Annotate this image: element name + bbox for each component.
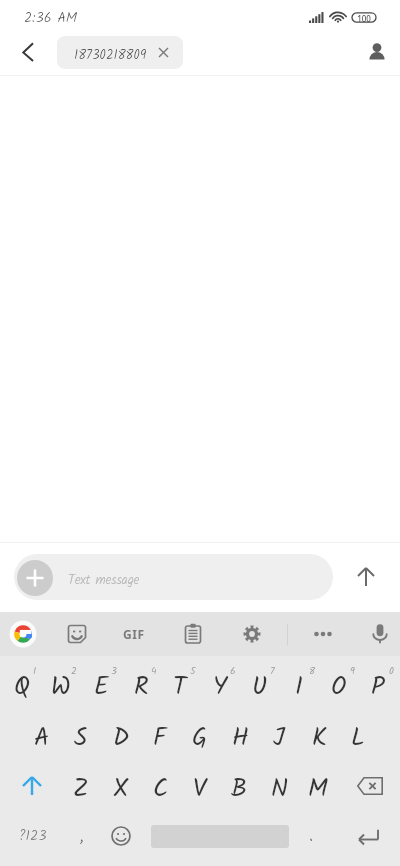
- staticText: ,: [80, 822, 84, 851]
- staticText: D: [113, 718, 130, 758]
- staticText: H: [232, 718, 249, 758]
- button[interactable]: K: [299, 714, 339, 762]
- button[interactable]: X: [101, 765, 141, 813]
- staticText: G: [192, 718, 208, 758]
- button[interactable]: V: [180, 765, 220, 813]
- button[interactable]: Contact details: [357, 33, 397, 73]
- staticText: F: [153, 718, 167, 758]
- staticText: 100: [357, 13, 371, 23]
- staticText: 5: [190, 663, 196, 679]
- button[interactable]: Attach: [14, 554, 333, 600]
- button[interactable]: ,: [62, 812, 102, 860]
- staticText: B: [231, 769, 247, 809]
- button[interactable]: Google: [9, 620, 37, 648]
- button[interactable]: Stickers: [63, 620, 91, 648]
- staticText: O: [331, 667, 347, 707]
- button[interactable]: C: [140, 765, 180, 813]
- staticText: 2:36 AM: [24, 7, 78, 29]
- button[interactable]: Settings: [238, 620, 266, 648]
- button[interactable]: Y: [200, 663, 240, 711]
- staticText: E: [94, 667, 109, 707]
- staticText: Text message: [68, 570, 140, 591]
- button[interactable]: A: [22, 714, 62, 762]
- button[interactable]: Voice input: [366, 620, 394, 648]
- button[interactable]: L: [338, 714, 378, 762]
- button[interactable]: Emoji: [102, 812, 140, 860]
- staticText: K: [312, 718, 327, 758]
- button[interactable]: W: [41, 663, 81, 711]
- button[interactable]: U: [239, 663, 279, 711]
- staticText: 2: [71, 663, 77, 679]
- staticText: J: [273, 718, 285, 758]
- button[interactable]: D: [101, 714, 141, 762]
- staticText: GIF: [123, 626, 145, 642]
- staticText: Z: [73, 769, 89, 809]
- button[interactable]: Q: [2, 663, 42, 711]
- button[interactable]: E: [81, 663, 121, 711]
- staticText: Q: [14, 667, 31, 707]
- button[interactable]: ?123: [11, 812, 55, 860]
- staticText: V: [193, 769, 207, 809]
- staticText: U: [252, 667, 267, 707]
- staticText: T: [173, 667, 187, 707]
- button[interactable]: O: [319, 663, 359, 711]
- button[interactable]: Backspace: [348, 762, 392, 810]
- button[interactable]: G: [180, 714, 220, 762]
- staticText: S: [74, 718, 88, 758]
- button[interactable]: Z: [61, 765, 101, 813]
- staticText: 9: [350, 663, 355, 679]
- button[interactable]: H: [220, 714, 260, 762]
- button[interactable]: M: [298, 765, 338, 813]
- staticText: M: [308, 769, 328, 809]
- staticText: R: [134, 667, 149, 707]
- button[interactable]: T: [160, 663, 200, 711]
- staticText: P: [371, 667, 385, 707]
- staticText: 3: [111, 663, 117, 679]
- button[interactable]: GIF: [120, 620, 148, 648]
- staticText: W: [51, 667, 71, 707]
- staticText: I: [295, 667, 303, 707]
- staticText: A: [34, 718, 50, 758]
- button[interactable]: Shift: [10, 762, 54, 810]
- staticText: 18730218809: [74, 45, 147, 66]
- staticText: 6: [230, 663, 236, 679]
- button[interactable]: Enter: [345, 812, 391, 860]
- button[interactable]: N: [259, 765, 299, 813]
- button[interactable]: I: [279, 663, 319, 711]
- button[interactable]: Clipboard: [179, 620, 207, 648]
- staticText: 1: [33, 663, 37, 679]
- staticText: .: [309, 822, 314, 851]
- staticText: X: [113, 769, 129, 809]
- staticText: L: [351, 718, 365, 758]
- button[interactable]: B: [219, 765, 259, 813]
- button[interactable]: F: [140, 714, 180, 762]
- button[interactable]: J: [259, 714, 299, 762]
- button[interactable]: Remove recipient: [153, 42, 173, 62]
- staticText: ?123: [19, 825, 47, 847]
- button[interactable]: Send: [346, 557, 386, 597]
- button[interactable]: More options: [309, 620, 337, 648]
- button[interactable]: Back: [8, 32, 48, 72]
- staticText: C: [153, 769, 168, 809]
- staticText: N: [271, 769, 288, 809]
- staticText: 4: [151, 663, 157, 679]
- button[interactable]: S: [61, 714, 101, 762]
- staticText: Y: [213, 667, 228, 707]
- button[interactable]: R: [121, 663, 161, 711]
- button[interactable]: Attach: [17, 560, 53, 596]
- button[interactable]: P: [358, 663, 398, 711]
- button[interactable]: 18730218809: [57, 36, 183, 69]
- staticText: 8: [309, 663, 316, 679]
- button[interactable]: .: [291, 812, 331, 860]
- staticText: 7: [270, 663, 275, 679]
- staticText: 0: [389, 663, 394, 679]
